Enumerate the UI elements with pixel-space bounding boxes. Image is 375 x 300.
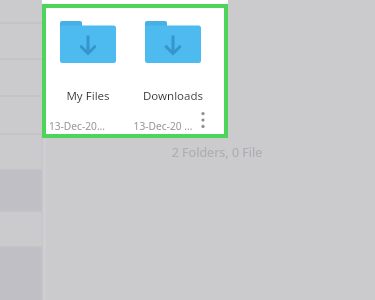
staticText: My Files — [52, 88, 124, 104]
staticText: Downloads — [137, 88, 209, 104]
button[interactable]: Downloads — [137, 14, 209, 106]
button[interactable]: More options — [194, 106, 212, 134]
staticText: 2 Folders, 0 File — [171, 144, 263, 161]
staticText: 13-Dec-20... — [46, 119, 108, 133]
button[interactable]: My Files — [52, 14, 124, 106]
staticText: 13-Dec-20 ... — [132, 119, 194, 133]
